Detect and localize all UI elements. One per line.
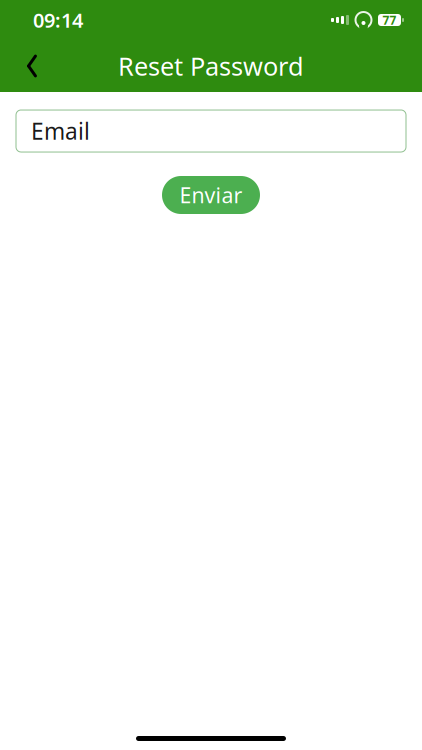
staticText: 77 — [382, 12, 396, 28]
button[interactable]: Enviar — [162, 176, 260, 214]
staticText: Enviar — [179, 181, 242, 209]
staticText: Email — [31, 116, 90, 146]
button[interactable]: Email — [16, 110, 406, 152]
button[interactable]: Back — [10, 44, 54, 88]
staticText: 09:14 — [33, 7, 83, 33]
staticText: Reset Password — [118, 49, 304, 83]
